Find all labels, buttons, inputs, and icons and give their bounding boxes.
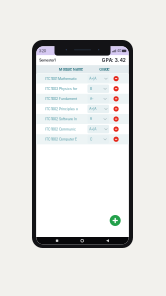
staticText: ITC 1001 Mathematic xyxy=(45,77,77,81)
button[interactable]: Remove ITC 1002 Software In xyxy=(113,116,119,122)
button[interactable]: A- xyxy=(87,95,109,103)
button[interactable]: A+|A xyxy=(87,74,109,83)
staticText: 3:20 xyxy=(39,49,46,53)
button[interactable]: A+|A xyxy=(87,105,109,113)
button[interactable]: Remove ITC 1002 Principles o xyxy=(113,106,119,111)
button[interactable]: Recents xyxy=(53,236,61,245)
button[interactable]: A+|A xyxy=(87,125,109,133)
button[interactable]: Back xyxy=(103,236,112,245)
button[interactable]: Remove ITC 1002 Communic xyxy=(113,126,119,132)
staticText: Grade xyxy=(99,67,109,72)
button[interactable]: Remove ITC 1002 Computer E xyxy=(113,137,119,142)
staticText: 4G xyxy=(117,49,121,53)
staticText: Semester1 xyxy=(39,58,55,62)
staticText: ITC 1002 Computer E xyxy=(45,137,77,141)
button[interactable]: Remove ITC 1001 Mathematic xyxy=(113,76,119,81)
staticText: ITC 1002 Fundament xyxy=(45,97,77,101)
staticText: B xyxy=(90,117,92,121)
button[interactable]: Remove ITC 1002 Fundament xyxy=(113,96,119,101)
staticText: A+|A xyxy=(89,77,96,81)
staticText: B xyxy=(90,87,92,91)
button[interactable]: Remove ITC 1003 Physics for xyxy=(113,86,119,91)
button[interactable]: C xyxy=(87,135,109,143)
button[interactable]: B xyxy=(87,84,109,93)
staticText: A+|A xyxy=(89,107,96,111)
staticText: A+|A xyxy=(89,127,96,131)
staticText: ITC 1002 Principles o xyxy=(45,107,78,111)
staticText: ITC 1002 Communic xyxy=(45,127,76,131)
staticText: ITC 1003 Physics for xyxy=(45,87,77,91)
button[interactable]: B xyxy=(87,115,109,123)
staticText: GPA: 3.42 xyxy=(102,57,126,63)
staticText: C xyxy=(90,137,92,141)
staticText: A- xyxy=(90,97,93,101)
button[interactable]: Home xyxy=(78,236,87,245)
staticText: Module Name xyxy=(59,67,83,72)
button[interactable]: Add module xyxy=(110,215,129,237)
staticText: ITC 1002 Software In xyxy=(45,117,77,121)
